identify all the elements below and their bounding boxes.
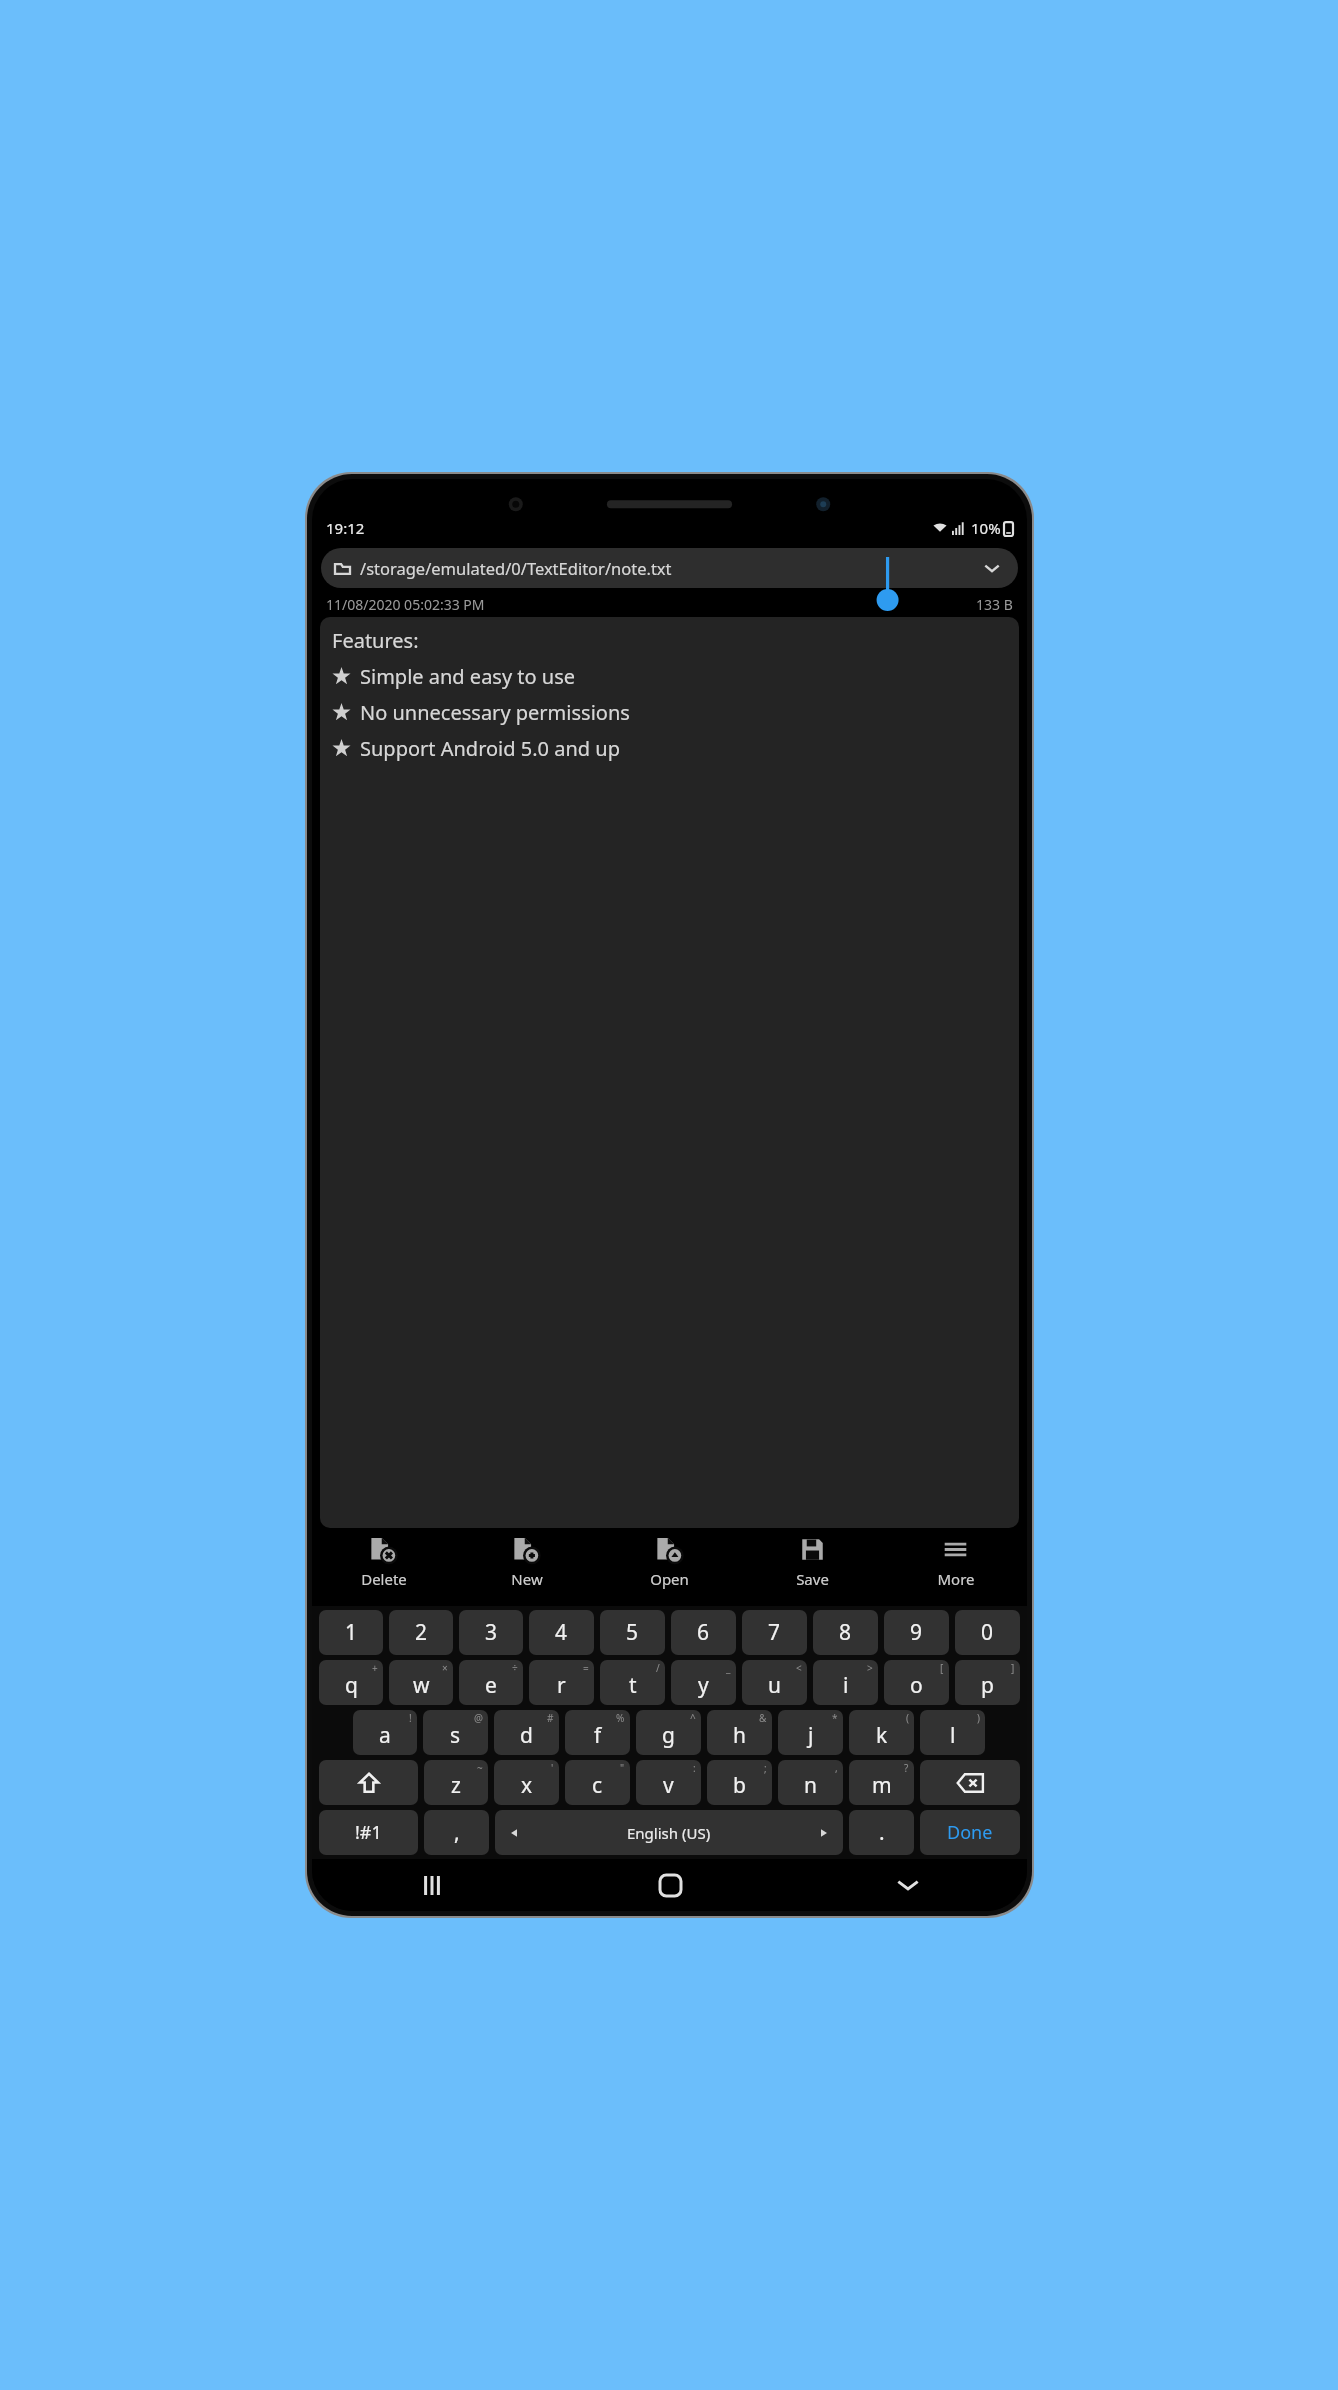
button[interactable]: 5 [600, 1610, 665, 1655]
button[interactable]: ^ [636, 1710, 701, 1755]
button[interactable]: Done [920, 1810, 1020, 1855]
button[interactable]: Delete [312, 1528, 455, 1606]
button[interactable]: ; [707, 1760, 772, 1805]
button[interactable]: 8 [813, 1610, 878, 1655]
button[interactable]: ? [849, 1760, 914, 1805]
staticText: w [413, 1671, 430, 1700]
button[interactable]: : [636, 1760, 701, 1805]
button[interactable]: @ [423, 1710, 488, 1755]
button[interactable]: !#1 [319, 1810, 418, 1855]
staticText: × [442, 1661, 448, 1675]
button[interactable]: Save [741, 1528, 884, 1606]
staticText: y [698, 1671, 709, 1700]
button[interactable]: Shift [319, 1760, 418, 1805]
staticText: q [345, 1671, 358, 1700]
button[interactable]: New [455, 1528, 598, 1606]
button[interactable]: " [565, 1760, 630, 1805]
button[interactable]: 2 [389, 1610, 453, 1655]
button[interactable]: Open [598, 1528, 741, 1606]
staticText: m [872, 1771, 892, 1800]
staticText: h [733, 1721, 746, 1750]
staticText: 4 [555, 1618, 568, 1647]
button[interactable]: / [600, 1660, 665, 1705]
button[interactable]: More [884, 1528, 1027, 1606]
button[interactable]: 0 [955, 1610, 1020, 1655]
button[interactable]: ' [494, 1760, 559, 1805]
button[interactable]: /storage/emulated/0/TextEditor/note.txt [321, 548, 1018, 588]
button[interactable]: ! [353, 1710, 417, 1755]
staticText: Features: [332, 627, 419, 654]
staticText: l [950, 1721, 956, 1750]
staticText: n [804, 1771, 817, 1800]
staticText: ^ [690, 1711, 696, 1725]
button[interactable]: 7 [742, 1610, 807, 1655]
staticText: g [662, 1721, 675, 1750]
button[interactable]: Recent apps [312, 1859, 551, 1911]
button[interactable]: # [494, 1710, 559, 1755]
button[interactable]: _ [671, 1660, 736, 1705]
staticText: ) [977, 1711, 980, 1725]
staticText: 8 [839, 1618, 852, 1647]
staticText: 6 [697, 1618, 710, 1647]
button[interactable]: % [565, 1710, 630, 1755]
button[interactable]: , [424, 1810, 489, 1855]
staticText: d [520, 1721, 533, 1750]
button[interactable]: Hide keyboard [789, 1859, 1027, 1911]
button[interactable]: [ [884, 1660, 949, 1705]
button[interactable]: Backspace [920, 1760, 1020, 1805]
staticText: 11/08/2020 05:02:33 PM [326, 595, 485, 614]
button[interactable]: . [849, 1810, 914, 1855]
button[interactable]: * [778, 1710, 843, 1755]
staticText: ; [764, 1761, 767, 1775]
button[interactable]: ( [849, 1710, 914, 1755]
staticText: i [843, 1671, 849, 1700]
button[interactable]: 9 [884, 1610, 949, 1655]
button[interactable]: English (US) [495, 1810, 843, 1855]
button[interactable]: ~ [424, 1760, 488, 1805]
button[interactable]: & [707, 1710, 772, 1755]
button[interactable]: Expand path options [979, 555, 1005, 581]
staticText: /storage/emulated/0/TextEditor/note.txt [360, 557, 672, 579]
staticText: English (US) [627, 1823, 711, 1843]
button[interactable]: Home [551, 1859, 789, 1911]
staticText: % [616, 1711, 625, 1725]
staticText: 7 [768, 1618, 781, 1647]
staticText: s [450, 1721, 461, 1750]
button[interactable]: ) [920, 1710, 985, 1755]
button[interactable]: > [813, 1660, 878, 1705]
staticText: 133 B [976, 595, 1013, 614]
staticText: k [876, 1721, 888, 1750]
staticText: > [867, 1661, 873, 1675]
button[interactable]: Features: [320, 617, 1019, 1528]
staticText: 3 [485, 1618, 498, 1647]
staticText: New [511, 1569, 543, 1589]
staticText: More [937, 1569, 975, 1589]
staticText: z [451, 1771, 461, 1800]
button[interactable]: ] [955, 1660, 1020, 1705]
staticText: , [835, 1761, 838, 1775]
staticText: < [796, 1661, 802, 1675]
button[interactable]: 6 [671, 1610, 736, 1655]
button[interactable]: + [319, 1660, 383, 1705]
staticText: p [981, 1671, 994, 1700]
button[interactable]: < [742, 1660, 807, 1705]
staticText: ÷ [512, 1661, 518, 1675]
staticText: Delete [361, 1569, 407, 1589]
button[interactable]: 1 [319, 1610, 383, 1655]
button[interactable]: = [529, 1660, 594, 1705]
button[interactable]: , [778, 1760, 843, 1805]
staticText: # [547, 1711, 554, 1725]
staticText: [ [940, 1661, 944, 1675]
staticText: Save [796, 1569, 829, 1589]
button[interactable]: 4 [529, 1610, 594, 1655]
button[interactable]: ÷ [459, 1660, 523, 1705]
button[interactable]: × [389, 1660, 453, 1705]
staticText: v [663, 1771, 674, 1800]
staticText: = [583, 1661, 589, 1675]
button[interactable]: 3 [459, 1610, 523, 1655]
staticText: 1 [345, 1618, 358, 1647]
staticText: " [620, 1761, 625, 1775]
staticText: / [656, 1661, 660, 1675]
staticText: Done [947, 1820, 993, 1845]
staticText: o [910, 1671, 923, 1700]
